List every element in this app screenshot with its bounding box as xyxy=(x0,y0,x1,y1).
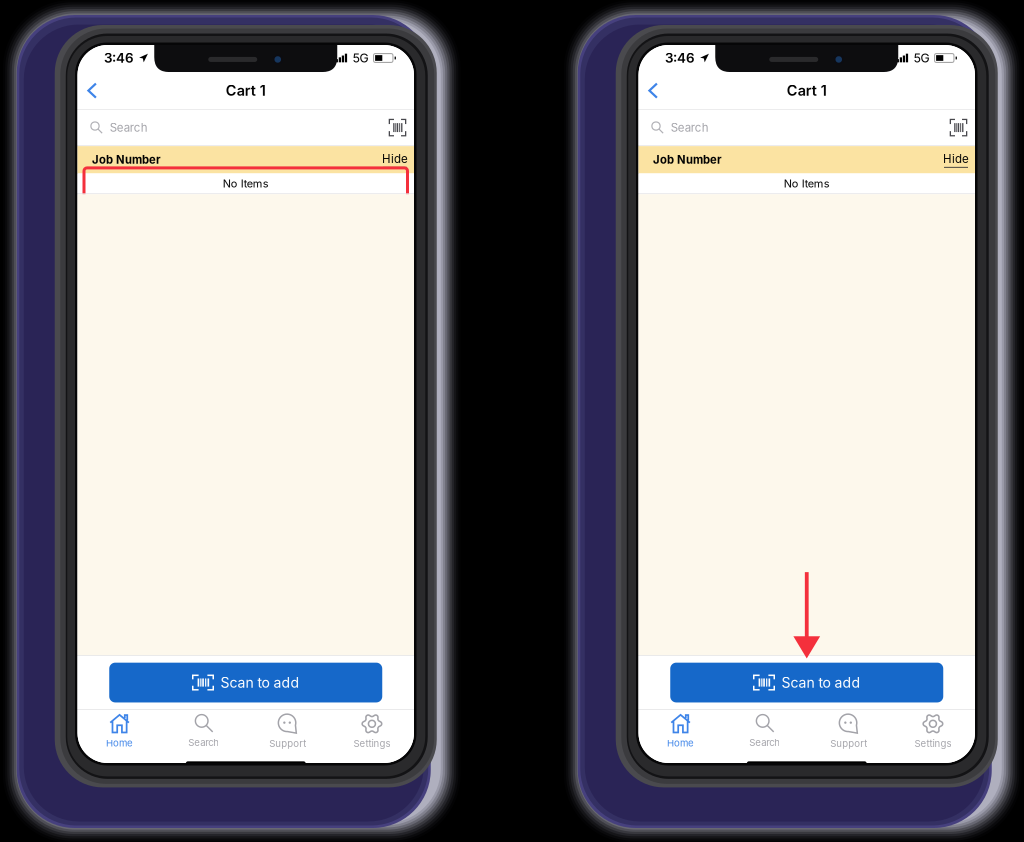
staticText: Cart 1 xyxy=(787,82,827,99)
button[interactable]: Back xyxy=(638,72,668,109)
button[interactable]: Hide xyxy=(943,152,969,168)
staticText: Search xyxy=(188,737,219,748)
staticText: No Items xyxy=(223,177,269,190)
staticText: Scan to add xyxy=(781,674,860,691)
staticText: 5G xyxy=(914,51,930,65)
staticText: Home xyxy=(106,737,133,749)
staticText: Job Number xyxy=(653,153,722,167)
staticText: Hide xyxy=(382,152,408,166)
button[interactable]: Search xyxy=(638,110,975,145)
staticText: 5G xyxy=(353,51,369,65)
button[interactable]: Home xyxy=(638,713,723,761)
button[interactable]: Support xyxy=(807,713,891,761)
button[interactable]: Scan to add xyxy=(109,663,382,702)
button[interactable]: Home xyxy=(77,713,162,761)
staticText: Job Number xyxy=(92,153,161,167)
button[interactable]: Settings xyxy=(330,713,414,761)
button[interactable]: Search xyxy=(723,713,807,761)
button[interactable]: Back xyxy=(77,72,107,109)
staticText: Settings xyxy=(914,738,951,749)
staticText: Home xyxy=(667,737,694,749)
button[interactable]: Search xyxy=(162,713,246,761)
staticText: Search xyxy=(749,737,780,748)
button[interactable]: Scan to add xyxy=(670,663,943,702)
button[interactable]: Support xyxy=(246,713,330,761)
staticText: Search xyxy=(110,121,148,135)
staticText: No Items xyxy=(784,177,830,190)
staticText: Search xyxy=(671,121,709,135)
staticText: 3:46 xyxy=(665,50,695,66)
staticText: Support xyxy=(830,738,867,749)
staticText: Support xyxy=(269,738,306,749)
staticText: 3:46 xyxy=(104,50,134,66)
staticText: Cart 1 xyxy=(226,82,266,99)
button[interactable]: Settings xyxy=(891,713,975,761)
staticText: Scan to add xyxy=(220,674,299,691)
button[interactable]: Search xyxy=(77,110,414,145)
button[interactable]: Hide xyxy=(382,152,408,168)
staticText: Settings xyxy=(353,738,390,749)
staticText: Hide xyxy=(943,152,969,166)
